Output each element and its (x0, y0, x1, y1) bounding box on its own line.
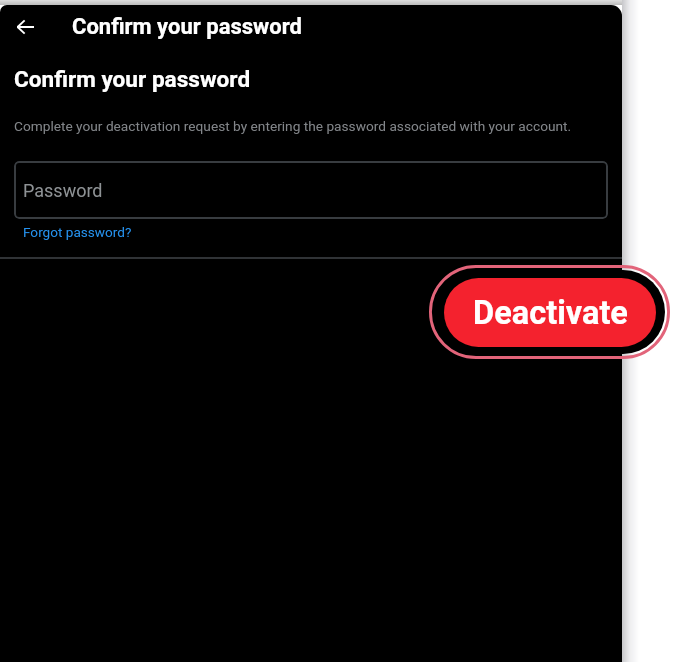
button[interactable]: Forgot password? (23, 224, 132, 240)
button[interactable]: Password (14, 161, 608, 219)
staticText: Password (23, 180, 103, 201)
staticText: Complete your deactivation request by en… (14, 118, 572, 134)
staticText: Confirm your password (14, 66, 251, 92)
button[interactable]: Deactivate (444, 278, 656, 347)
staticText: Confirm your password (72, 14, 302, 40)
button[interactable]: Back (5, 7, 45, 47)
staticText: Deactivate (473, 294, 628, 332)
